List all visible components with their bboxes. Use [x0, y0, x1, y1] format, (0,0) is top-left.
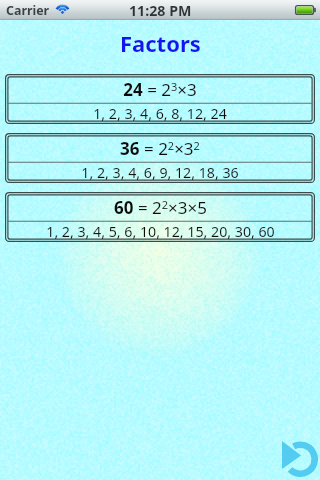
staticText: 1, 2, 3, 4, 5, 6, 10, 12, 15, 20, 30, 60 [46, 222, 275, 241]
button[interactable]: Undo [280, 439, 320, 479]
staticText: 1, 2, 3, 4, 6, 8, 12, 24 [93, 104, 227, 123]
staticText: Factors [120, 28, 201, 58]
staticText: 1, 2, 3, 4, 6, 9, 12, 18, 36 [81, 163, 239, 182]
staticText: 11:28 PM [129, 1, 192, 20]
staticText: 60 = 22×3×5 [114, 196, 207, 219]
button[interactable]: 60 = 22×3×5 [5, 192, 315, 242]
staticText: Carrier [6, 2, 50, 19]
button[interactable]: 36 = 22×32 [5, 133, 315, 183]
button[interactable]: 24 = 23×3 [5, 74, 315, 124]
staticText: 36 = 22×32 [120, 137, 200, 160]
staticText: 24 = 23×3 [123, 78, 197, 101]
